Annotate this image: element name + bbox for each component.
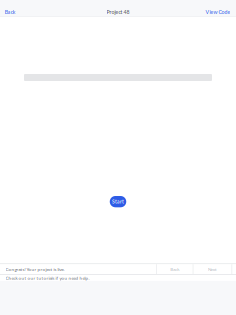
staticText: Back	[170, 266, 179, 272]
staticText: Project 48	[106, 9, 129, 15]
button[interactable]: Back	[0, 7, 20, 17]
button[interactable]: Next	[193, 264, 231, 274]
staticText: Next	[208, 266, 217, 272]
staticText: Back	[5, 9, 16, 15]
button[interactable]: Back	[157, 264, 193, 274]
staticText: Check out our tutorials if you need help…	[6, 275, 90, 281]
button[interactable]: View Code	[201, 7, 236, 17]
button[interactable]: Start	[110, 196, 126, 207]
staticText: Congrats! Your project is live.	[6, 266, 65, 272]
staticText: View Code	[205, 9, 230, 15]
staticText: Start	[112, 199, 124, 205]
